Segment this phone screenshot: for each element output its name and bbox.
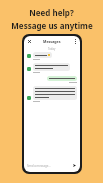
- button[interactable]: [35, 54, 50, 56]
- button[interactable]: More options: [72, 38, 78, 44]
- staticText: Send a message…: [27, 164, 51, 168]
- button[interactable]: Send: [72, 163, 77, 168]
- staticText: Messages: [43, 39, 61, 44]
- button[interactable]: Send a message…: [24, 160, 80, 171]
- staticText: Message us anytime: [11, 20, 93, 31]
- staticText: Need help?: [29, 7, 74, 18]
- button[interactable]: Close: [26, 38, 32, 44]
- staticText: Today: [48, 47, 56, 51]
- button[interactable]: [35, 65, 68, 69]
- button[interactable]: [35, 88, 75, 98]
